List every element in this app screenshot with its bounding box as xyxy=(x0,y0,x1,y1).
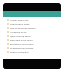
staticText: Lorem ipsum dol xyxy=(10,19,29,22)
button[interactable]: Consectetur adipi xyxy=(3,22,61,26)
staticText: Consectetur adipi xyxy=(10,23,30,26)
staticText: Excepteur sint occaec xyxy=(10,43,34,46)
button[interactable]: Duis aute irure dolor xyxy=(3,38,61,42)
staticText: Sunt in culpa qui xyxy=(10,51,29,54)
staticText: Quis nostrud exerc xyxy=(10,35,31,38)
button[interactable]: Ut labore et do xyxy=(3,30,61,34)
staticText: Ut labore et do xyxy=(10,31,27,34)
staticText: Sed do eiusmod tempo xyxy=(10,27,36,30)
button[interactable]: Quis nostrud exerc xyxy=(3,34,61,38)
button[interactable]: Excepteur sint occaec xyxy=(3,42,61,46)
button[interactable]: Lorem ipsum dol xyxy=(3,18,61,22)
button[interactable]: Cupidatat non proide xyxy=(3,46,61,50)
staticText: Duis aute irure dolor xyxy=(10,39,33,42)
button[interactable]: Sed do eiusmod tempo xyxy=(3,26,61,30)
button[interactable]: Sunt in culpa qui xyxy=(3,50,61,54)
staticText: Cupidatat non proide xyxy=(10,47,34,50)
